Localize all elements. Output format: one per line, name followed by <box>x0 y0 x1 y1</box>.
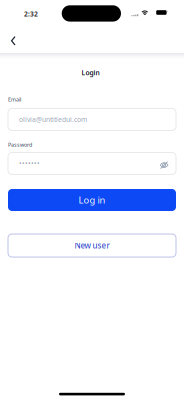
button[interactable]: New user <box>8 234 176 257</box>
button[interactable]: Back <box>6 30 32 50</box>
staticText: olivia@untitledui.com <box>19 115 87 124</box>
staticText: Login <box>81 68 99 77</box>
staticText: Email <box>8 96 21 103</box>
button[interactable]: Log in <box>8 189 176 211</box>
staticText: Password <box>8 141 32 148</box>
button[interactable]: Show password <box>160 159 168 168</box>
staticText: Log in <box>78 194 105 206</box>
staticText: 2:32 <box>24 10 38 18</box>
staticText: New user <box>74 240 109 251</box>
staticText: ••••••• <box>19 159 40 168</box>
